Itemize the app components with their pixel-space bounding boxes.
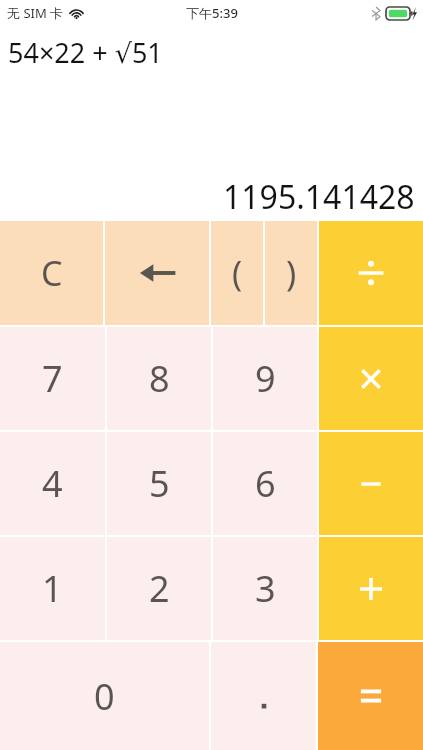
staticText: 1195.141428 (223, 175, 415, 219)
button[interactable]: 3 (213, 537, 317, 640)
staticText: ) (286, 250, 297, 296)
button[interactable]: Multiply (319, 327, 423, 430)
button[interactable]: 1 (0, 537, 105, 640)
button[interactable]: 7 (0, 327, 105, 430)
staticText: 9 (255, 354, 276, 403)
button[interactable]: 4 (0, 432, 105, 535)
staticText: 0 (94, 672, 115, 721)
staticText: 54×22 + √51 (8, 34, 163, 71)
staticText: 7 (42, 354, 63, 403)
staticText: 8 (149, 354, 170, 403)
staticText: 下午5:39 (186, 4, 238, 22)
button[interactable]: 6 (213, 432, 317, 535)
staticText: 无 SIM 卡 (7, 4, 64, 22)
button[interactable]: 2 (107, 537, 211, 640)
button[interactable]: 5 (107, 432, 211, 535)
staticText: 4 (42, 459, 63, 508)
button[interactable]: Decimal point (211, 642, 316, 750)
button[interactable]: 0 (0, 642, 209, 750)
button[interactable]: 9 (213, 327, 317, 430)
staticText: C (41, 250, 63, 296)
staticText: 6 (255, 459, 276, 508)
staticText: ( (232, 250, 243, 296)
button[interactable]: Equals (318, 642, 423, 750)
button[interactable]: ( (211, 221, 263, 325)
button[interactable]: C (0, 221, 103, 325)
staticText: 1 (42, 564, 63, 613)
button[interactable]: Plus (319, 537, 423, 640)
staticText: 5 (149, 459, 170, 508)
staticText: 2 (149, 564, 170, 613)
button[interactable]: Divide (319, 221, 423, 325)
staticText: 3 (255, 564, 276, 613)
button[interactable]: Backspace (105, 221, 209, 325)
button[interactable]: 8 (107, 327, 211, 430)
button[interactable]: ) (265, 221, 317, 325)
button[interactable]: Minus (319, 432, 423, 535)
